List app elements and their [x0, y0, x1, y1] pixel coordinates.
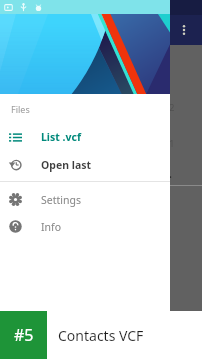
staticText: Settings — [41, 193, 81, 207]
button[interactable]: More options — [174, 20, 194, 40]
button[interactable]: Info — [0, 213, 170, 240]
staticText: Contacts VCF — [58, 326, 144, 345]
staticText: Info — [41, 220, 62, 234]
button[interactable]: List .vcf — [0, 123, 170, 151]
staticText: Open last — [41, 158, 92, 172]
staticText: 11:05 AM — [124, 75, 159, 86]
staticText: Recording 1 — [124, 137, 175, 149]
staticText: Import... — [124, 166, 172, 181]
staticText: Files — [11, 103, 30, 115]
staticText: Voicemail — [124, 65, 165, 77]
button[interactable]: Settings — [0, 186, 170, 213]
staticText: #5 — [14, 324, 34, 346]
staticText: Recording 2 — [124, 101, 175, 113]
button[interactable]: Open last — [0, 151, 170, 178]
button[interactable]: #5 — [0, 311, 47, 359]
staticText: List .vcf — [41, 130, 81, 144]
